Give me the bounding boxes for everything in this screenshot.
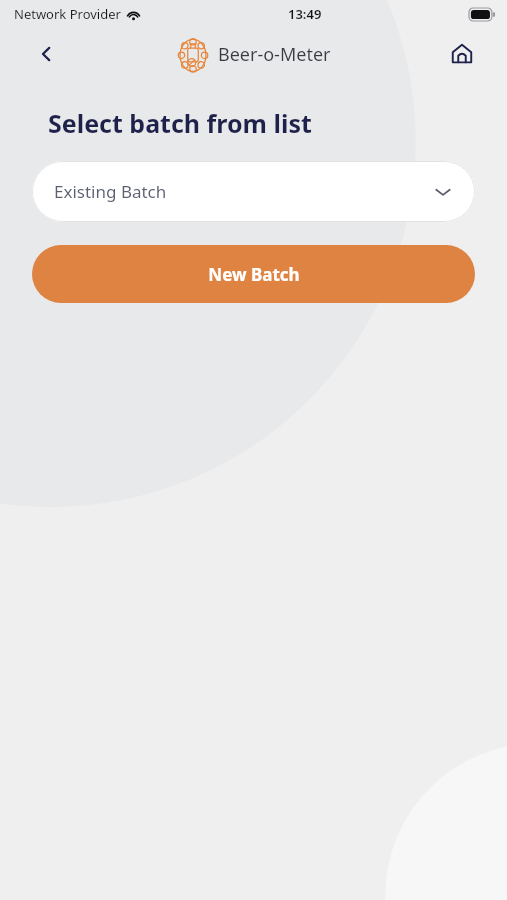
staticText: Beer-o-Meter	[218, 42, 331, 67]
staticText: Select batch from list	[48, 106, 312, 140]
staticText: New Batch	[208, 263, 300, 286]
button[interactable]: New Batch	[32, 245, 475, 303]
staticText: Existing Batch	[54, 180, 167, 203]
button[interactable]: Existing Batch	[32, 161, 475, 222]
staticText: 13:49	[288, 5, 322, 23]
button[interactable]: Back	[28, 36, 64, 72]
button[interactable]: Home	[443, 35, 481, 73]
staticText: Network Provider	[14, 5, 121, 23]
